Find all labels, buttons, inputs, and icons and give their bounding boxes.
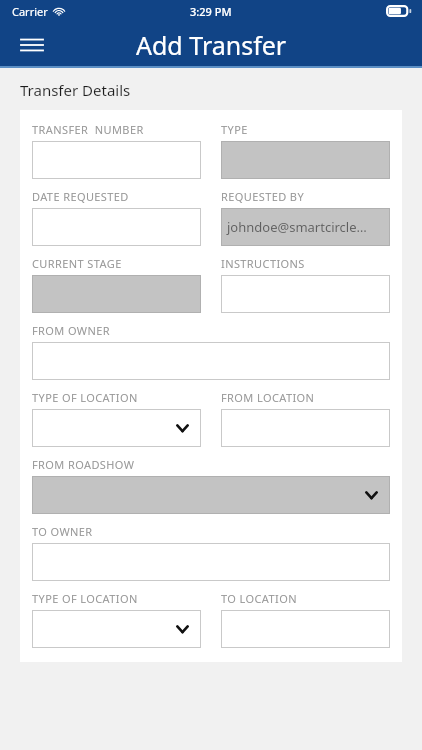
staticText: TYPE OF LOCATION [32, 591, 138, 606]
button[interactable]: johndoe@smartcircle… [221, 208, 390, 246]
staticText: TYPE [221, 122, 248, 137]
button[interactable] [221, 141, 390, 179]
staticText: 3:29 PM [190, 4, 232, 19]
staticText: TO LOCATION [221, 591, 297, 606]
button[interactable] [32, 275, 201, 313]
staticText: INSTRUCTIONS [221, 256, 305, 271]
staticText: FROM ROADSHOW [32, 457, 135, 472]
staticText: TYPE OF LOCATION [32, 390, 138, 405]
button[interactable] [221, 275, 390, 313]
staticText: Add Transfer [136, 28, 287, 62]
button[interactable] [32, 543, 390, 581]
staticText: DATE REQUESTED [32, 189, 129, 204]
button[interactable] [32, 610, 201, 648]
button[interactable] [32, 141, 201, 179]
button[interactable] [32, 342, 390, 380]
staticText: FROM OWNER [32, 323, 111, 338]
button[interactable] [32, 476, 390, 514]
button[interactable] [32, 409, 201, 447]
button[interactable] [221, 409, 390, 447]
staticText: FROM LOCATION [221, 390, 315, 405]
staticText: TO OWNER [32, 524, 93, 539]
staticText: CURRENT STAGE [32, 256, 122, 271]
staticText: Carrier [12, 4, 48, 19]
staticText: TRANSFER NUMBER [32, 122, 144, 137]
staticText: Transfer Details [20, 80, 131, 100]
staticText: johndoe@smartcircle… [227, 218, 367, 236]
button[interactable] [221, 610, 390, 648]
staticText: REQUESTED BY [221, 189, 305, 204]
button[interactable]: Menu [10, 23, 54, 67]
button[interactable] [32, 208, 201, 246]
